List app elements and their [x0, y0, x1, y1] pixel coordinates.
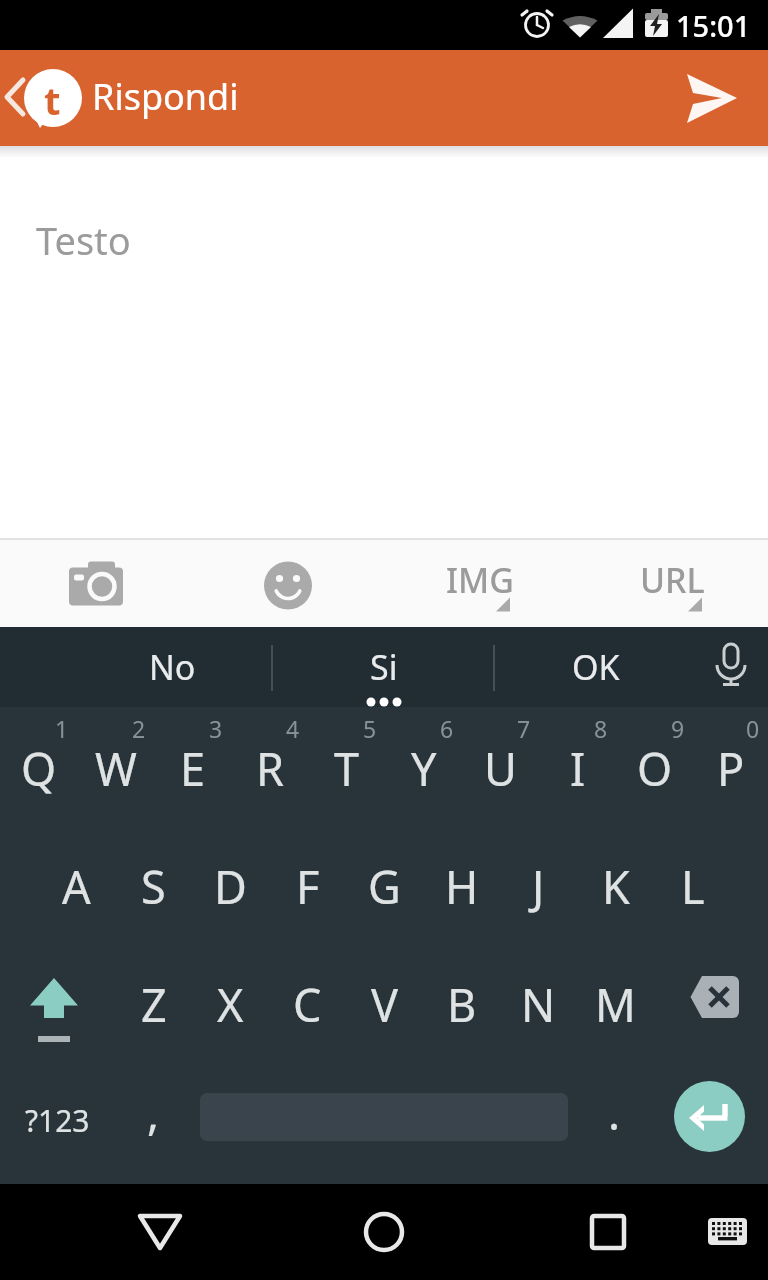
button[interactable]: A — [38, 825, 115, 943]
staticText: 7 — [517, 713, 531, 744]
staticText: 4 — [286, 713, 300, 744]
button[interactable]: 9 — [616, 707, 693, 825]
staticText: 1 — [55, 713, 69, 744]
staticText: OK — [572, 644, 620, 690]
button[interactable]: B — [423, 943, 500, 1061]
staticText: 8 — [594, 713, 608, 744]
staticText: K — [602, 856, 630, 917]
button[interactable]: , — [115, 1061, 192, 1179]
button[interactable]: 7 — [462, 707, 539, 825]
button[interactable]: 4 — [231, 707, 308, 825]
staticText: R — [256, 738, 284, 799]
staticText: No — [149, 644, 196, 690]
button[interactable] — [560, 1184, 656, 1280]
button[interactable] — [192, 540, 384, 627]
staticText: Si — [370, 644, 398, 690]
staticText: C — [293, 974, 322, 1035]
button[interactable]: . — [576, 1061, 653, 1179]
staticText: M — [595, 974, 636, 1035]
staticText: Rispondi — [92, 72, 239, 121]
staticText: S — [141, 856, 166, 917]
staticText: , — [147, 1082, 160, 1143]
button[interactable] — [336, 1184, 432, 1280]
staticText: Q — [21, 738, 57, 799]
staticText: 5 — [363, 713, 377, 744]
button[interactable] — [690, 1184, 768, 1280]
button[interactable]: 6 — [385, 707, 462, 825]
button[interactable] — [702, 627, 768, 707]
button[interactable]: 2 — [77, 707, 154, 825]
button[interactable]: 1 — [0, 707, 77, 825]
staticText: 2 — [132, 713, 146, 744]
staticText: E — [180, 738, 206, 799]
staticText: 6 — [440, 713, 454, 744]
button[interactable]: IMG — [384, 540, 576, 627]
staticText: t — [44, 74, 61, 126]
staticText: . — [608, 1082, 621, 1143]
button[interactable] — [112, 1184, 208, 1280]
button[interactable]: G — [346, 825, 423, 943]
button[interactable]: D — [192, 825, 269, 943]
button[interactable]: t — [0, 50, 96, 146]
staticText: V — [371, 974, 399, 1035]
staticText: 3 — [209, 713, 223, 744]
button[interactable]: C — [269, 943, 346, 1061]
button[interactable]: S — [115, 825, 192, 943]
button[interactable] — [654, 943, 768, 1061]
staticText: F — [296, 856, 320, 917]
staticText: 9 — [671, 713, 685, 744]
staticText: Testo — [36, 214, 131, 266]
staticText: ?123 — [25, 1100, 90, 1141]
staticText: W — [95, 738, 137, 799]
button[interactable] — [653, 1061, 768, 1179]
staticText: P — [717, 738, 745, 799]
staticText: A — [62, 856, 91, 917]
staticText: D — [214, 856, 247, 917]
staticText: Y — [411, 738, 437, 799]
button[interactable]: 8 — [539, 707, 616, 825]
button[interactable]: X — [192, 943, 269, 1061]
staticText: 0 — [746, 713, 760, 744]
staticText: O — [637, 738, 673, 799]
button[interactable] — [684, 56, 768, 140]
staticText: J — [532, 856, 545, 917]
button[interactable]: No — [66, 627, 278, 707]
staticText: G — [368, 856, 401, 917]
staticText: 15:01 — [676, 6, 751, 45]
button[interactable]: 5 — [308, 707, 385, 825]
staticText: U — [484, 738, 517, 799]
button[interactable]: M — [577, 943, 654, 1061]
button[interactable]: J — [500, 825, 577, 943]
button[interactable]: ?123 — [0, 1061, 115, 1179]
button[interactable]: H — [423, 825, 500, 943]
staticText: Z — [141, 974, 167, 1035]
button[interactable]: URL — [576, 540, 768, 627]
staticText: IMG — [446, 557, 514, 603]
button[interactable] — [0, 540, 192, 627]
button[interactable]: N — [500, 943, 577, 1061]
button[interactable] — [192, 1061, 576, 1179]
staticText: B — [447, 974, 477, 1035]
button[interactable] — [0, 943, 115, 1061]
button[interactable]: OK — [490, 627, 702, 707]
staticText: URL — [640, 557, 705, 603]
button[interactable]: V — [346, 943, 423, 1061]
button[interactable]: Z — [115, 943, 192, 1061]
button[interactable]: F — [269, 825, 346, 943]
staticText: N — [521, 974, 556, 1035]
button[interactable]: L — [654, 825, 731, 943]
button[interactable]: K — [577, 825, 654, 943]
staticText: H — [445, 856, 479, 917]
staticText: L — [681, 856, 705, 917]
staticText: T — [334, 738, 360, 799]
button[interactable]: 3 — [154, 707, 231, 825]
staticText: I — [570, 738, 586, 799]
button[interactable]: 0 — [693, 707, 768, 825]
staticText: X — [217, 974, 244, 1035]
button[interactable]: Si — [278, 627, 490, 707]
